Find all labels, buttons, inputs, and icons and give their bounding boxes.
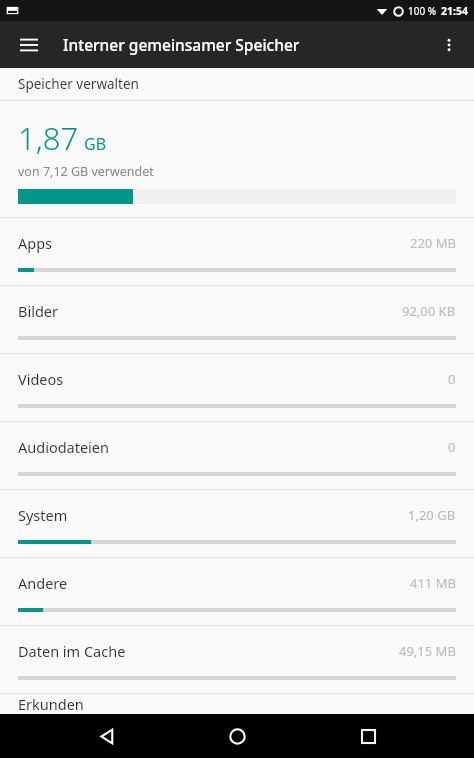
staticText: 49,15 MB <box>399 642 456 660</box>
button[interactable]: Videos <box>0 354 474 422</box>
button[interactable]: Speicher verwalten <box>0 68 474 100</box>
staticText: 1,20 GB <box>408 506 456 524</box>
staticText: von 7,12 GB verwendet <box>18 163 154 180</box>
staticText: 411 MB <box>410 574 456 592</box>
staticText: GB <box>84 133 107 155</box>
staticText: 100 % <box>408 4 437 18</box>
staticText: Speicher verwalten <box>18 75 139 93</box>
button[interactable]: Weitere Optionen <box>430 26 468 64</box>
staticText: 220 MB <box>410 234 456 252</box>
staticText: 0 <box>448 438 456 456</box>
button[interactable]: Erkunden <box>0 694 474 714</box>
staticText: Erkunden <box>18 694 84 714</box>
staticText: 92,00 KB <box>402 302 456 320</box>
button[interactable]: Daten im Cache <box>0 626 474 694</box>
button[interactable]: System <box>0 490 474 558</box>
button[interactable]: Audiodateien <box>0 422 474 490</box>
button[interactable]: Menü <box>12 28 46 62</box>
staticText: 0 <box>448 370 456 388</box>
staticText: Apps <box>18 233 53 253</box>
staticText: Andere <box>18 573 68 593</box>
button[interactable]: Apps <box>0 218 474 286</box>
button[interactable]: Übersicht <box>344 714 392 758</box>
button[interactable]: Startbildschirm <box>213 714 261 758</box>
staticText: 1,87 <box>18 117 79 159</box>
staticText: Daten im Cache <box>18 641 126 661</box>
button[interactable]: Bilder <box>0 286 474 354</box>
button[interactable]: Zurück <box>83 714 131 758</box>
staticText: 21:54 <box>441 4 468 18</box>
staticText: Interner gemeinsamer Speicher <box>63 34 300 55</box>
staticText: Bilder <box>18 301 58 321</box>
staticText: System <box>18 505 68 525</box>
button[interactable]: Andere <box>0 558 474 626</box>
staticText: Audiodateien <box>18 437 110 457</box>
button[interactable]: 1,87 <box>0 101 474 218</box>
staticText: Videos <box>18 369 64 389</box>
